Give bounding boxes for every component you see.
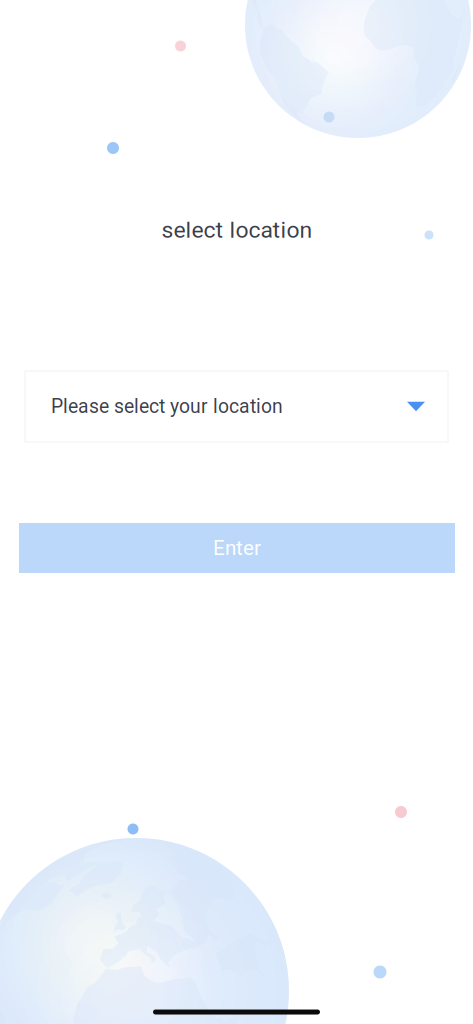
- staticText: Enter: [213, 536, 261, 560]
- button[interactable]: Please select your location: [25, 371, 448, 442]
- button[interactable]: Enter: [19, 523, 455, 573]
- staticText: select location: [161, 217, 312, 243]
- staticText: Please select your location: [51, 395, 283, 418]
